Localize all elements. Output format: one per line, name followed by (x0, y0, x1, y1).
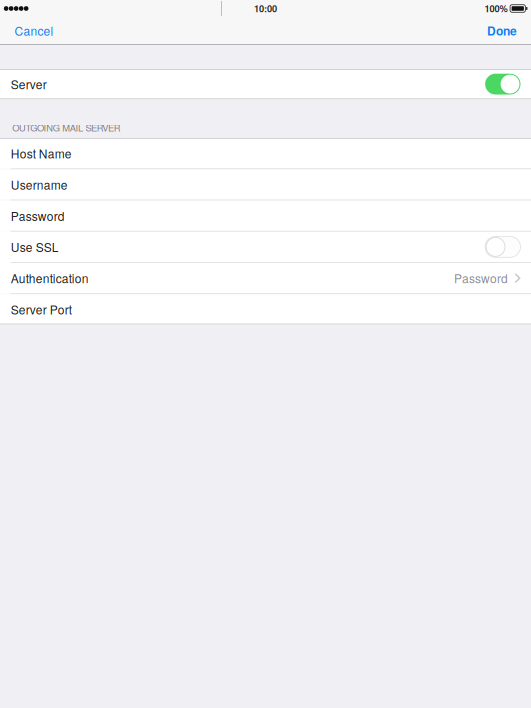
button[interactable]: Use SSL (485, 236, 520, 257)
button[interactable]: Password (0, 201, 531, 231)
staticText: Password (11, 207, 65, 224)
button[interactable]: Authentication (0, 263, 531, 293)
staticText: Host Name (11, 145, 72, 162)
staticText: OUTGOING MAIL SERVER (12, 121, 121, 134)
staticText: Password (454, 269, 508, 287)
button[interactable]: Server Port (0, 294, 531, 324)
staticText: Use SSL (11, 238, 59, 255)
staticText: Username (11, 176, 68, 193)
staticText: Server (11, 75, 47, 93)
button[interactable]: Host Name (0, 138, 531, 168)
staticText: Server Port (11, 301, 72, 318)
staticText: Done (487, 22, 517, 39)
staticText: Cancel (14, 22, 53, 39)
button[interactable]: Username (0, 169, 531, 200)
staticText: 10:00 (254, 2, 277, 15)
button[interactable]: Done (475, 17, 531, 43)
button[interactable]: Server (485, 74, 520, 95)
staticText: 100% (485, 2, 508, 15)
staticText: Authentication (11, 269, 89, 287)
button[interactable]: Cancel (0, 17, 65, 43)
